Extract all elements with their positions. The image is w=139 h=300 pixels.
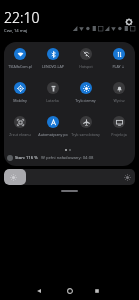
button[interactable]: Settings — [123, 16, 135, 28]
button[interactable]: Mobilny — [4, 76, 36, 110]
button[interactable]: TSIAlfaCom.pl — [4, 42, 36, 76]
staticText: Automatyczny po — [38, 132, 68, 137]
button[interactable]: Zrzut ekranu — [4, 110, 36, 144]
staticText: PLAY ↓ — [112, 64, 125, 69]
staticText: Projekcja — [111, 132, 127, 137]
button[interactable]: Tryb samolotowy — [69, 110, 102, 144]
staticText: Czw, 14 maj — [4, 28, 28, 34]
staticText: LENOVO-LAP — [42, 64, 64, 69]
staticText: Zrzut ekranu — [9, 132, 31, 137]
button[interactable]: Recents — [91, 285, 103, 297]
button[interactable]: Automatyczny po — [36, 110, 69, 144]
button[interactable]: Tryb ciemny — [69, 76, 102, 110]
button[interactable]: PLAY ↓ — [102, 42, 135, 76]
button[interactable]: Hotspot — [69, 42, 102, 76]
staticText: Tryb ciemny — [75, 98, 96, 103]
staticText: Tryb samolotowy — [71, 132, 100, 137]
staticText: 22:10 — [4, 8, 40, 27]
button[interactable]: Home — [64, 285, 76, 297]
button[interactable]: Back — [32, 285, 44, 297]
staticText: Wycisz — [113, 98, 125, 103]
button[interactable]: Latarka — [36, 76, 69, 110]
staticText: TSIAlfaCom.pl — [8, 64, 32, 69]
staticText: Stan: 116 % — [15, 155, 38, 161]
staticText: Hotspot — [79, 64, 93, 69]
staticText: W pełni naładowany: 04:08 — [41, 155, 94, 161]
button[interactable]: Brightness — [4, 169, 135, 185]
button[interactable]: Projekcja — [102, 110, 135, 144]
staticText: Latarka — [46, 98, 59, 103]
button[interactable]: Wycisz — [102, 76, 135, 110]
button[interactable]: LENOVO-LAP — [36, 42, 69, 76]
staticText: Mobilny — [13, 98, 27, 103]
